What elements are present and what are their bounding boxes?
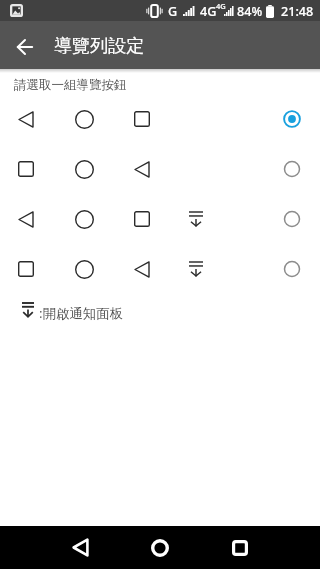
button[interactable] xyxy=(0,94,320,144)
button[interactable] xyxy=(0,144,320,194)
button[interactable]: Back xyxy=(40,526,120,569)
staticText: 21:48 xyxy=(281,3,314,20)
button[interactable] xyxy=(0,244,320,294)
staticText: :開啟通知面板 xyxy=(39,304,123,322)
button[interactable]: Back xyxy=(2,23,48,71)
staticText: 請選取一組導覽按鈕 xyxy=(14,77,127,93)
staticText: G xyxy=(168,3,178,20)
button[interactable]: Recents xyxy=(200,526,280,569)
staticText: 導覽列設定 xyxy=(54,35,144,58)
staticText: 84% xyxy=(237,3,263,20)
staticText: 4G xyxy=(200,3,217,20)
staticText: 4G xyxy=(216,1,226,11)
button[interactable]: Home xyxy=(120,526,200,569)
button[interactable] xyxy=(0,194,320,244)
